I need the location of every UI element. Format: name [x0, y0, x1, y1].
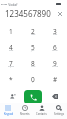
button[interactable]: Call [24, 90, 42, 104]
staticText: Contacts [36, 112, 47, 116]
staticText: MNO [52, 49, 58, 52]
button[interactable]: 3 [44, 24, 66, 40]
staticText: 7 [9, 59, 13, 68]
staticText: Recents [20, 112, 30, 116]
staticText: 0 [31, 75, 35, 84]
staticText: ••••• Vodaf [1, 2, 18, 7]
button[interactable]: Keypad [0, 102, 16, 118]
staticText: 9 [53, 59, 57, 68]
staticText: DEF [53, 33, 58, 36]
staticText: GHI [9, 49, 14, 52]
button[interactable]: Add contact [0, 89, 24, 104]
staticText: 8 [31, 59, 35, 68]
staticText: WXYZ [52, 65, 59, 68]
staticText: 2 [31, 27, 35, 36]
staticText: 1234567890 [5, 8, 51, 19]
staticText: 4 [9, 43, 13, 52]
staticText: PQRS [8, 65, 14, 68]
button[interactable]: 9 [44, 56, 66, 72]
button[interactable]: 5 [22, 40, 44, 56]
staticText: TUV [31, 65, 36, 68]
button[interactable]: Recents [16, 102, 33, 118]
staticText: 3 [53, 27, 57, 36]
staticText: JKL [31, 49, 35, 52]
button[interactable]: 1 [0, 24, 22, 40]
staticText: * [9, 75, 13, 84]
staticText: Settings [54, 112, 64, 116]
staticText: 5 [31, 43, 35, 52]
button[interactable]: 6 [44, 40, 66, 56]
staticText: 6 [53, 43, 57, 52]
staticText: # [53, 75, 58, 84]
button[interactable]: * [0, 72, 22, 88]
button[interactable]: Backspace [42, 89, 67, 104]
button[interactable]: 4 [0, 40, 22, 56]
button[interactable]: Clear [55, 9, 64, 18]
staticText: Keypad [4, 112, 13, 116]
staticText: + [32, 81, 34, 84]
staticText: 1 [9, 27, 13, 36]
button[interactable]: # [44, 72, 66, 88]
button[interactable]: 8 [22, 56, 44, 72]
staticText: ABC [31, 33, 36, 36]
button[interactable]: 7 [0, 56, 22, 72]
button[interactable]: Settings [50, 102, 67, 118]
button[interactable]: Contacts [33, 102, 50, 118]
button[interactable]: 0 [22, 72, 44, 88]
button[interactable]: 2 [22, 24, 44, 40]
